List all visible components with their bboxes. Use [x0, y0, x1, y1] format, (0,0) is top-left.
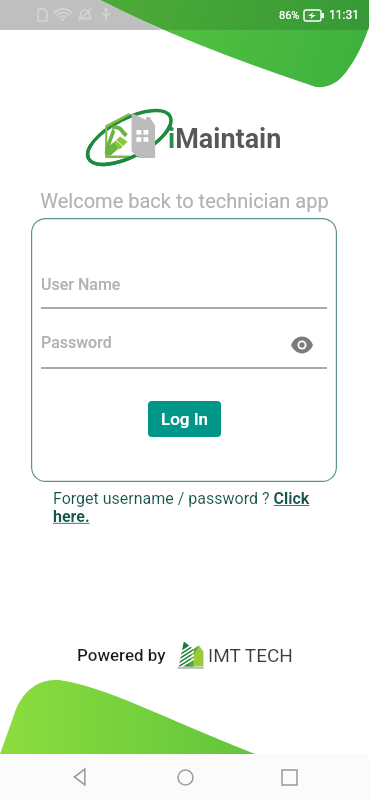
button[interactable]: Home — [161, 754, 209, 800]
staticText: Log In — [161, 409, 208, 429]
staticText: iMaintain — [168, 123, 282, 155]
staticText: IMT TECH — [208, 644, 293, 666]
button[interactable]: Forget username / password ? Click here. — [53, 489, 325, 526]
button[interactable]: Log In — [148, 401, 221, 437]
staticText: Welcome back to technician app — [0, 189, 369, 212]
staticText: User Name — [41, 275, 121, 294]
staticText: Password — [41, 333, 112, 352]
staticText: 86% — [279, 9, 300, 22]
staticText: 11:31 — [329, 8, 359, 22]
staticText: Forget username / password ? Click here. — [53, 489, 325, 526]
button[interactable]: Show password — [285, 333, 319, 357]
button[interactable]: Password — [41, 331, 327, 369]
staticText: Powered by — [77, 645, 166, 665]
button[interactable]: Back — [56, 754, 104, 800]
button[interactable]: User Name — [41, 273, 327, 309]
button[interactable]: Recents — [265, 754, 313, 800]
